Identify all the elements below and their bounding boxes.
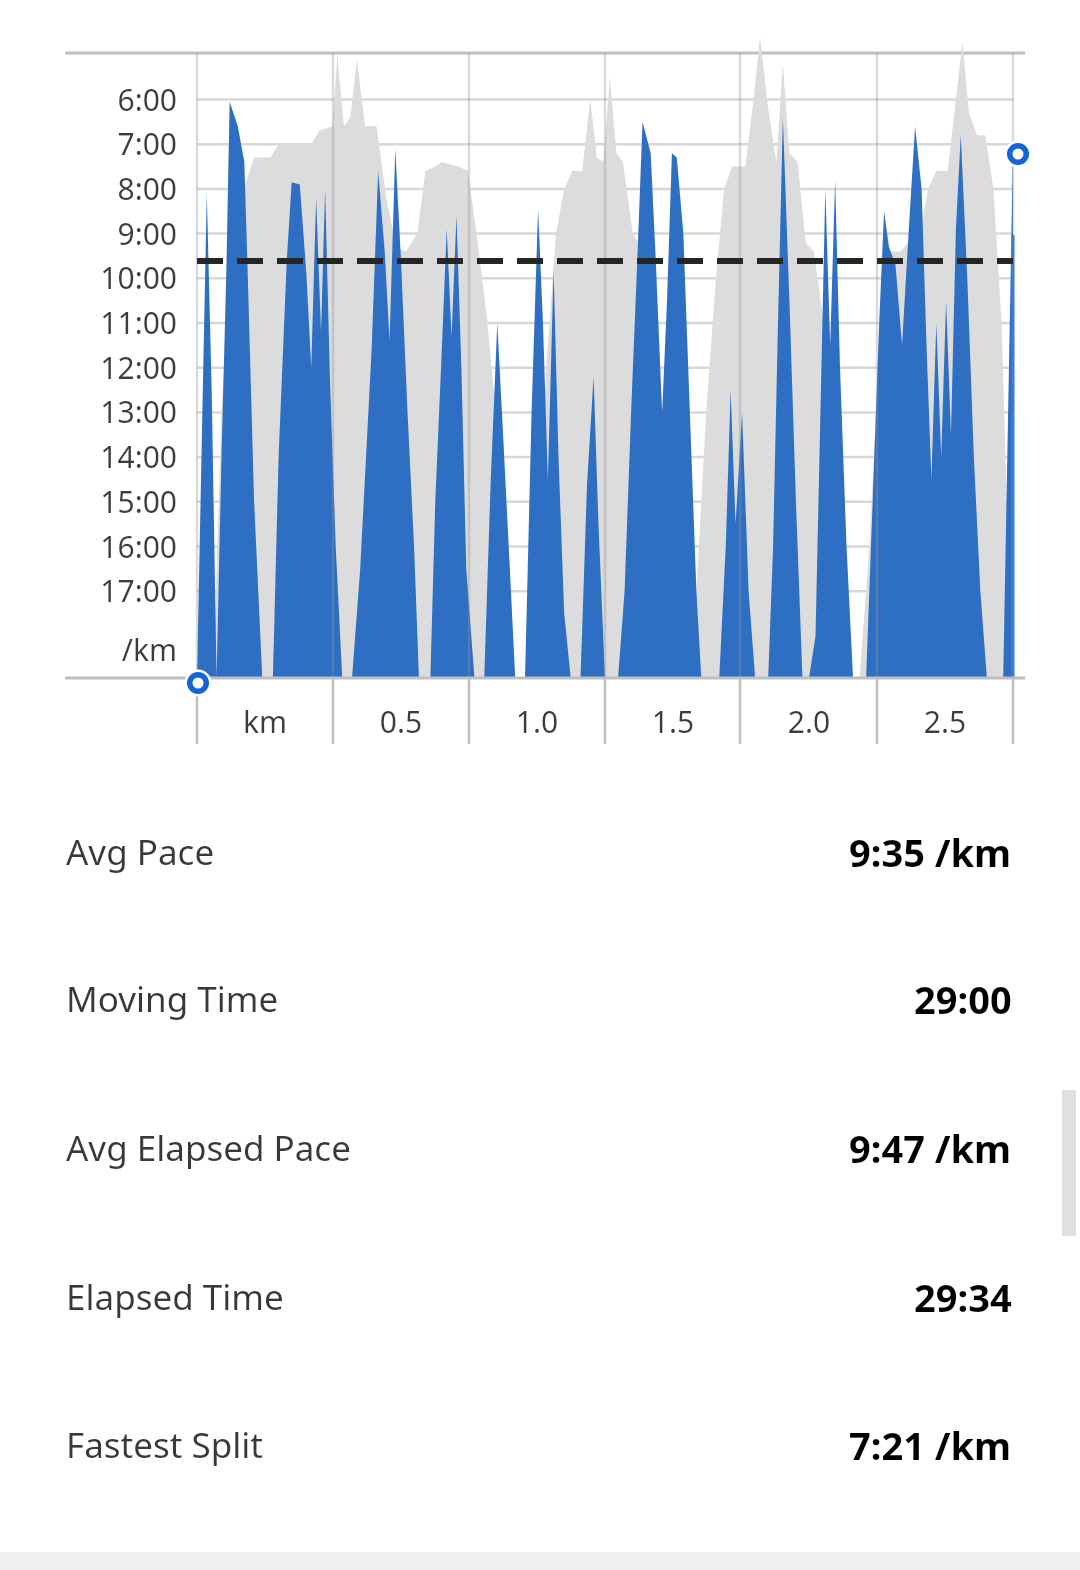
staticText: /km [0,629,177,670]
staticText: 7:21 /km [849,1419,1012,1471]
staticText: 16:00 [0,526,177,567]
staticText: 2.5 [875,701,1015,742]
staticText: 8:00 [0,168,177,209]
button[interactable]: Avg Pace [0,823,1080,881]
staticText: 9:35 /km [849,826,1012,878]
staticText: 13:00 [0,391,177,432]
staticText: 12:00 [0,347,177,388]
staticText: 15:00 [0,481,177,522]
staticText: Avg Pace [66,828,215,876]
staticText: 9:00 [0,213,177,254]
staticText: 6:00 [0,79,177,120]
button[interactable]: Elapsed Time [0,1268,1080,1326]
staticText: 29:00 [914,973,1012,1025]
staticText: Fastest Split [66,1421,263,1469]
button[interactable]: Avg Elapsed Pace [0,1119,1080,1177]
button[interactable]: Moving Time [0,970,1080,1028]
staticText: 1.0 [467,701,607,742]
staticText: 14:00 [0,436,177,477]
staticText: 10:00 [0,257,177,298]
staticText: Elapsed Time [66,1273,284,1321]
staticText: 17:00 [0,570,177,611]
staticText: Avg Elapsed Pace [66,1124,351,1172]
staticText: 11:00 [0,302,177,343]
staticText: 2.0 [739,701,879,742]
staticText: 7:00 [0,123,177,164]
staticText: Moving Time [66,975,279,1023]
staticText: 9:47 /km [849,1122,1012,1174]
staticText: 1.5 [603,701,743,742]
staticText: 29:34 [914,1271,1012,1323]
staticText: km [195,701,335,742]
button[interactable]: Pace chart [0,0,1080,760]
staticText: 0.5 [331,701,471,742]
button[interactable]: Fastest Split [0,1416,1080,1474]
